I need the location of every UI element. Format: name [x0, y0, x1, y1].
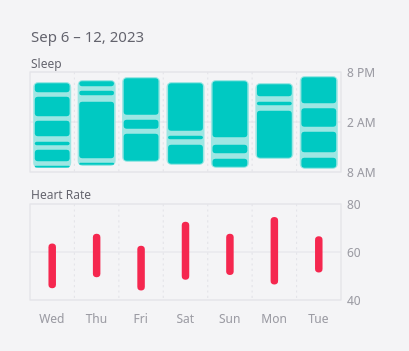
button[interactable] — [0, 0, 409, 351]
